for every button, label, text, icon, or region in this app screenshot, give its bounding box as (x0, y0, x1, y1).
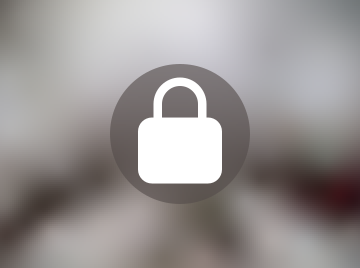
button[interactable]: Locked content (110, 64, 250, 204)
